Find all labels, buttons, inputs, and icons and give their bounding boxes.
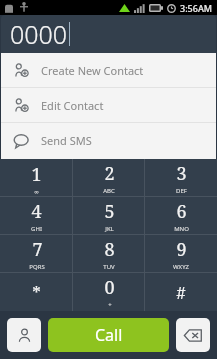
staticText: 1 (31, 162, 42, 187)
staticText: Edit Contact (41, 98, 104, 113)
button[interactable]: 6 (145, 197, 217, 235)
staticText: WXYZ (173, 263, 189, 271)
button[interactable]: 7 (0, 235, 73, 273)
staticText: 0000 (10, 17, 68, 51)
staticText: 3 (176, 161, 187, 186)
button[interactable]: Backspace (176, 318, 210, 352)
staticText: Send SMS (41, 133, 92, 148)
button[interactable]: 2 (73, 159, 145, 197)
staticText: TUV (103, 263, 115, 271)
button[interactable]: 0000 (1, 15, 216, 53)
staticText: + (108, 301, 112, 309)
button[interactable]: Call (48, 318, 169, 352)
staticText: Create New Contact (41, 63, 144, 78)
button[interactable]: # (145, 273, 217, 311)
button[interactable]: Create New Contact (1, 53, 216, 87)
button[interactable]: 3 (145, 159, 217, 197)
staticText: 2 (104, 161, 115, 186)
staticText: # (176, 281, 186, 304)
staticText: 8 (104, 237, 115, 262)
staticText: 9 (176, 237, 187, 262)
staticText: GHI (31, 225, 42, 233)
staticText: 4 (31, 199, 42, 224)
button[interactable]: 5 (73, 197, 145, 235)
button[interactable]: Edit Contact (1, 88, 216, 122)
staticText: DEF (176, 187, 187, 195)
button[interactable]: Send SMS (1, 123, 216, 157)
button[interactable]: 9 (145, 235, 217, 273)
staticText: 5 (104, 199, 115, 224)
staticText: 0 (104, 275, 115, 300)
button[interactable]: 4 (0, 197, 73, 235)
button[interactable]: 1 (0, 159, 73, 197)
staticText: 6 (176, 199, 187, 224)
button[interactable]: Contacts (7, 318, 41, 352)
button[interactable]: 0 (73, 273, 145, 311)
staticText: ABC (103, 187, 115, 195)
staticText: * (32, 281, 41, 304)
staticText: 7 (32, 237, 43, 262)
staticText: PQRS (29, 263, 45, 271)
staticText: MNO (174, 225, 189, 233)
button[interactable]: * (0, 273, 73, 311)
staticText: Call (95, 324, 123, 346)
staticText: 3:56AM (180, 2, 213, 14)
staticText: ∞ (34, 188, 39, 195)
staticText: JKL (105, 225, 114, 233)
button[interactable]: 8 (73, 235, 145, 273)
